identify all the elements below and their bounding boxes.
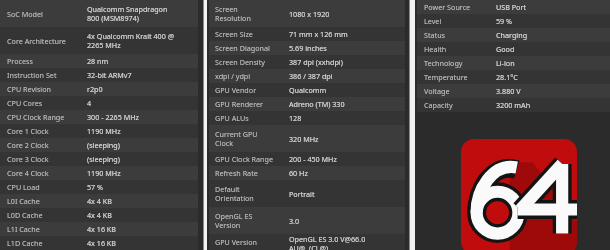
button[interactable]: Refresh Rate [209,166,405,180]
button[interactable]: Core 1 Clock [0,124,198,138]
staticText: Instruction Set [7,70,57,80]
staticText: 1190 MHz [87,168,121,178]
staticText: Process [7,56,33,66]
button[interactable]: GPU Vendor [209,83,405,97]
button[interactable]: GPU Clock Range [209,152,405,166]
button[interactable]: Technology [417,56,610,70]
button[interactable]: Power Source [417,0,610,14]
button[interactable]: L0I Cache [0,194,198,208]
button[interactable]: L1D Cache [0,236,198,250]
staticText: Current GPU Clock [215,129,258,148]
staticText: 28.1°C [496,72,518,82]
button[interactable]: Health [417,42,610,56]
button[interactable]: GPU Version [209,234,405,250]
staticText: CPU Cores [7,98,43,108]
button[interactable]: Screen Diagonal [209,41,405,55]
button[interactable]: CPU Clock Range [0,110,198,124]
staticText: Temperature [424,72,468,82]
staticText: Core 1 Clock [7,126,49,136]
staticText: 71 mm x 126 mm [289,29,348,39]
staticText: Power Source [424,2,471,12]
button[interactable]: Core 4 Clock [0,166,198,180]
button[interactable]: SoC Model [0,0,198,27]
button[interactable]: Screen Size [209,27,405,41]
staticText: GPU Version [215,237,257,247]
staticText: 60 Hz [289,168,308,178]
button[interactable]: Capacity [417,98,610,112]
staticText: 1080 x 1920 [289,9,330,19]
staticText: 4x 4 KB [87,196,112,206]
staticText: Level [424,16,442,26]
staticText: GPU Renderer [215,99,263,109]
staticText: OpenGL ES Version [215,211,253,230]
staticText: 3200 mAh [496,100,531,110]
staticText: Health [424,44,447,54]
staticText: CPU Revision [7,84,51,94]
staticText: (sleeping) [87,154,120,164]
staticText: (sleeping) [87,140,120,150]
staticText: Screen Density [215,57,265,67]
staticText: CPU Clock Range [7,112,65,122]
button[interactable]: Instruction Set [0,68,198,82]
staticText: Adreno (TM) 330 [289,99,345,109]
button[interactable]: Core 3 Clock [0,152,198,166]
staticText: 1190 MHz [87,126,121,136]
staticText: Voltage [424,86,450,96]
button[interactable]: Level [417,14,610,28]
button[interactable]: Screen Resolution [209,0,405,27]
button[interactable]: Screen Density [209,55,405,69]
button[interactable]: OpenGL ES Version [209,207,405,234]
button[interactable]: CPU Cores [0,96,198,110]
staticText: 200 - 450 MHz [289,154,337,164]
staticText: 32-bit ARMv7 [87,70,132,80]
button[interactable]: GPU ALUs [209,111,405,125]
staticText: 3.0 [289,216,300,226]
button[interactable]: CPU Load [0,180,198,194]
button[interactable]: L1I Cache [0,222,198,236]
staticText: Screen Resolution [215,4,251,23]
staticText: 3.880 V [496,86,521,96]
button[interactable]: GPU Renderer [209,97,405,111]
staticText: GPU Vendor [215,85,257,95]
button[interactable]: CPU Revision [0,82,198,96]
staticText: 128 [289,113,302,123]
staticText: Status [424,30,446,40]
staticText: 57 % [87,182,104,192]
staticText: GPU ALUs [215,113,249,123]
staticText: Technology [424,58,463,68]
staticText: 4 [87,98,92,108]
staticText: SoC Model [7,9,43,19]
staticText: L0D Cache [7,210,43,220]
staticText: Qualcomm [289,85,327,95]
staticText: Refresh Rate [215,168,258,178]
button[interactable]: AIDA64 app icon [461,139,577,250]
staticText: 4x 4 KB [87,210,112,220]
staticText: Screen Diagonal [215,43,270,53]
staticText: Default Orientation [215,184,254,203]
button[interactable]: Status [417,28,610,42]
button[interactable]: Default Orientation [209,180,405,207]
staticText: r2p0 [87,84,103,94]
staticText: 28 nm [87,56,109,66]
button[interactable]: Temperature [417,70,610,84]
button[interactable]: Process [0,54,198,68]
staticText: Good [496,44,515,54]
button[interactable]: L0D Cache [0,208,198,222]
staticText: CPU Load [7,182,40,192]
button[interactable]: Core 2 Clock [0,138,198,152]
staticText: 386 / 387 dpi [289,71,333,81]
button[interactable]: xdpi / ydpi [209,69,405,83]
staticText: OpenGL ES 3.0 V@66.0 AU@ (CL@) [289,234,366,250]
staticText: 5.69 inches [289,43,327,53]
button[interactable]: Voltage [417,84,610,98]
staticText: Qualcomm Snapdragon 800 (MSM8974) [87,4,168,23]
button[interactable]: Current GPU Clock [209,125,405,152]
staticText: Core 4 Clock [7,168,49,178]
staticText: Portrait [289,189,315,199]
staticText: Capacity [424,100,453,110]
staticText: 59 % [496,16,513,26]
staticText: Charging [496,30,528,40]
staticText: L1I Cache [7,224,40,234]
staticText: 387 dpi (xxhdpi) [289,57,343,67]
button[interactable]: Core Architecture [0,27,198,54]
